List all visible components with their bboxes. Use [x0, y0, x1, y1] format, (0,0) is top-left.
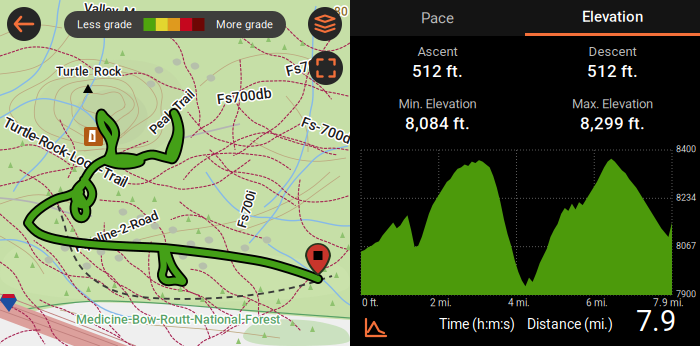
staticText: Valley M	[83, 2, 134, 17]
staticText: Medicine-Bow-Routt-National-Forest	[75, 311, 279, 326]
staticText: Fs700i	[229, 203, 267, 218]
staticText: 80	[335, 3, 349, 18]
staticText: Valley M	[85, 2, 136, 17]
staticText: Pipeline-2-Road	[71, 223, 160, 238]
staticText: Time (h:m:s)	[439, 316, 515, 332]
staticText: Fs-700d	[300, 121, 352, 137]
staticText: Turtle-Rock-Loop-Trail	[0, 143, 134, 159]
staticText: Fs700db	[217, 87, 272, 103]
staticText: Fs700db	[217, 88, 272, 105]
button[interactable]: Back	[7, 7, 41, 41]
staticText: Valley M	[84, 4, 135, 19]
button[interactable]: Charts	[360, 313, 392, 342]
staticText: 8,299 ft.	[580, 113, 645, 133]
staticText: Peak-Trail	[145, 104, 202, 120]
staticText: Medicine-Bow-Routt-National-Forest	[75, 313, 279, 328]
staticText: Turtle-Rock-Loop-Trail	[0, 146, 135, 161]
staticText: Fs700db	[216, 87, 271, 103]
staticText: Fs70	[287, 59, 318, 75]
staticText: 4 mi.	[508, 297, 530, 309]
staticText: 80	[334, 6, 348, 20]
staticText: Fs70	[284, 59, 315, 75]
staticText: 2 mi.	[430, 297, 452, 309]
staticText: Fs700i	[226, 202, 264, 217]
staticText: Peak-Trail	[142, 104, 199, 120]
button[interactable]: Pace	[350, 0, 525, 36]
staticText: Medicine-Bow-Routt-National-Forest	[76, 311, 280, 325]
staticText: Fs700db	[218, 88, 273, 105]
staticText: Fs70	[286, 60, 317, 76]
staticText: 6 mi.	[586, 297, 608, 309]
staticText: 8234	[676, 192, 696, 203]
staticText: 512 ft.	[412, 61, 463, 81]
staticText: Fs700i	[229, 202, 267, 217]
staticText: Fs-700d	[299, 121, 351, 138]
staticText: Fs-700d	[300, 122, 352, 139]
staticText: Peak-Trail	[143, 106, 200, 121]
staticText: Fs70	[287, 60, 318, 76]
staticText: Fs700db	[217, 90, 272, 106]
staticText: 80	[334, 3, 348, 17]
staticText: Fs70	[286, 58, 317, 75]
staticText: 7.9	[636, 304, 676, 338]
staticText: Medicine-Bow-Routt-National-Forest	[77, 311, 281, 326]
staticText: Fs70	[284, 60, 315, 76]
staticText: Turtle Rock	[54, 65, 119, 79]
staticText: Valley M	[82, 3, 133, 18]
staticText: Fs-700d	[300, 124, 352, 140]
staticText: Pipeline-2-Road	[70, 224, 159, 239]
staticText: Medicine-Bow-Routt-National-Forest	[76, 314, 280, 328]
staticText: Turtle Rock	[56, 65, 121, 79]
staticText: Peak-Trail	[143, 103, 200, 118]
staticText: Turtle Rock	[57, 65, 122, 79]
staticText: Turtle-Rock-Loop-Trail	[0, 146, 134, 162]
staticText: Pace	[421, 9, 454, 27]
staticText: Fs700i	[227, 202, 265, 217]
staticText: 8400	[676, 144, 696, 154]
staticText: 80	[335, 5, 349, 19]
button[interactable]: Map layers	[308, 7, 342, 41]
staticText: 8,084 ft.	[405, 113, 470, 133]
staticText: 512 ft.	[587, 61, 638, 81]
button[interactable]: Elevation	[525, 0, 700, 36]
staticText: Pipeline-2-Road	[73, 223, 162, 238]
staticText: Pipeline-2-Road	[71, 225, 160, 240]
staticText: Fs-700d	[301, 123, 353, 140]
staticText: Fs-700d	[299, 123, 351, 140]
staticText: Fs-700d	[299, 122, 351, 139]
staticText: Medicine-Bow-Routt-National-Forest	[77, 312, 281, 327]
staticText: Peak-Trail	[144, 103, 201, 118]
staticText: Less grade	[77, 18, 132, 31]
staticText: Turtle-Rock-Loop-Trail	[0, 143, 135, 159]
staticText: 7.9 mi.	[653, 297, 684, 309]
staticText: Descent	[588, 44, 636, 59]
staticText: Turtle-Rock-Loop-Trail	[0, 146, 132, 161]
staticText: Peak-Trail	[143, 104, 200, 120]
staticText: Turtle Rock	[57, 66, 122, 80]
staticText: Turtle Rock	[55, 66, 120, 80]
button[interactable]: Expand map	[309, 51, 343, 85]
staticText: Fs700db	[218, 89, 273, 106]
staticText: Fs700i	[227, 200, 265, 215]
staticText: Pipeline-2-Road	[73, 225, 162, 240]
staticText: Distance (mi.)	[527, 316, 613, 332]
staticText: 7900	[676, 289, 696, 299]
staticText: Peak-Trail	[142, 103, 199, 118]
button[interactable]: Less grade	[64, 11, 286, 38]
staticText: Valley M	[84, 1, 135, 16]
staticText: Turtle Rock	[57, 63, 122, 78]
staticText: Pipeline-2-Road	[73, 224, 162, 239]
staticText: Fs70	[287, 61, 318, 77]
staticText: 80	[332, 5, 346, 19]
staticText: Max. Elevation	[572, 96, 653, 111]
staticText: Fs-700d	[302, 122, 354, 139]
staticText: Valley M	[84, 3, 135, 18]
staticText: Valley M	[85, 3, 136, 18]
staticText: Medicine-Bow-Routt-National-Forest	[77, 313, 281, 328]
staticText: Valley M	[83, 4, 134, 19]
staticText: Turtle-Rock-Loop-Trail	[0, 144, 135, 160]
staticText: Turtle-Rock-Loop-Trail	[0, 143, 132, 159]
staticText: 80	[335, 6, 349, 20]
staticText: Fs700db	[218, 87, 273, 103]
staticText: Pipeline-2-Road	[72, 222, 161, 238]
